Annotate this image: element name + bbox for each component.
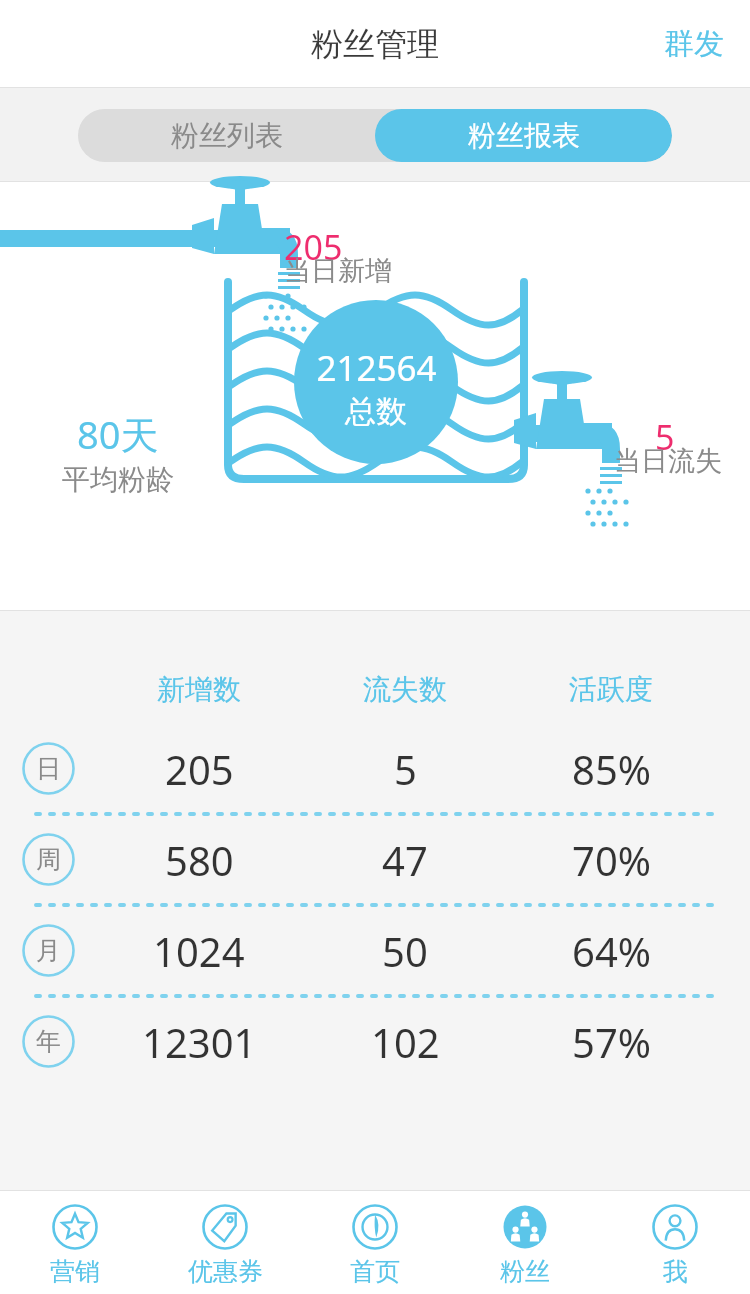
staticText: 周 — [36, 844, 61, 875]
button[interactable]: 粉丝报表 — [375, 109, 672, 162]
staticText: 102 — [371, 1015, 440, 1069]
staticText: 流失数 — [363, 672, 447, 707]
button[interactable]: 营销 — [0, 1191, 150, 1294]
staticText: 1024 — [153, 924, 245, 978]
button[interactable]: 日 — [0, 723, 750, 814]
staticText: 12301 — [142, 1015, 257, 1069]
staticText: 当日流失 — [614, 444, 722, 478]
staticText: 我 — [663, 1256, 688, 1287]
staticText: 粉丝管理 — [311, 24, 439, 64]
staticText: 205 — [284, 224, 343, 270]
staticText: 47 — [382, 833, 428, 887]
button[interactable]: 我 — [600, 1191, 750, 1294]
staticText: 首页 — [350, 1256, 400, 1287]
staticText: 粉丝报表 — [468, 118, 580, 153]
staticText: 活跃度 — [569, 672, 653, 707]
staticText: 优惠券 — [188, 1256, 263, 1287]
staticText: 粉丝 — [500, 1256, 550, 1287]
staticText: 70% — [572, 833, 651, 887]
staticText: 85% — [572, 742, 651, 796]
staticText: 580 — [165, 833, 234, 887]
button[interactable]: 优惠券 — [150, 1191, 300, 1294]
staticText: 5 — [655, 414, 675, 460]
staticText: 57% — [572, 1015, 651, 1069]
button[interactable]: 群发 — [638, 9, 750, 79]
staticText: 当日新增 — [284, 254, 392, 288]
staticText: 205 — [165, 742, 234, 796]
staticText: 年 — [36, 1026, 61, 1057]
staticText: 新增数 — [157, 672, 241, 707]
staticText: 群发 — [664, 25, 724, 63]
staticText: 日 — [36, 753, 61, 784]
staticText: 212564 — [316, 344, 437, 392]
staticText: 50 — [382, 924, 428, 978]
button[interactable]: 周 — [0, 814, 750, 905]
staticText: 粉丝列表 — [171, 118, 283, 153]
staticText: 平均粉龄 — [62, 462, 174, 497]
staticText: 月 — [36, 935, 61, 966]
button[interactable]: 粉丝列表 — [78, 109, 375, 162]
button[interactable]: 粉丝 — [450, 1191, 600, 1294]
staticText: 营销 — [50, 1256, 100, 1287]
staticText: 总数 — [345, 392, 407, 431]
button[interactable]: 首页 — [300, 1191, 450, 1294]
staticText: 80天 — [77, 408, 159, 460]
staticText: 64% — [572, 924, 651, 978]
staticText: 5 — [394, 742, 417, 796]
button[interactable]: 月 — [0, 905, 750, 996]
button[interactable]: 年 — [0, 996, 750, 1087]
